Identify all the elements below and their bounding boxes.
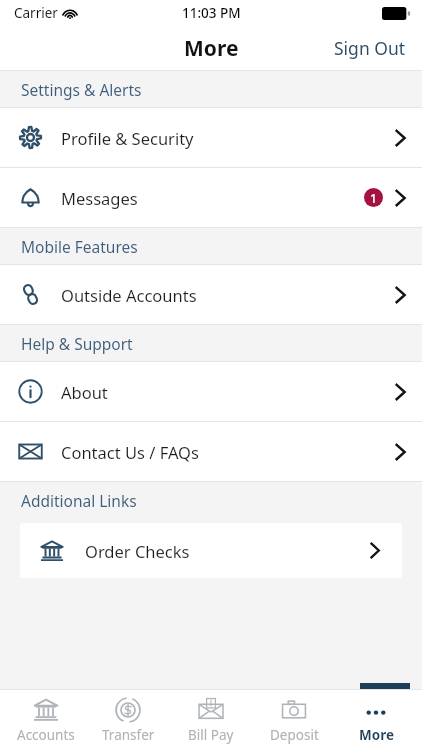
button[interactable]: More bbox=[339, 693, 413, 747]
staticText: More bbox=[359, 726, 394, 744]
staticText: About bbox=[61, 381, 108, 403]
other: About bbox=[18, 379, 43, 404]
staticText: Sign Out bbox=[334, 36, 406, 60]
other: Profile & Security bbox=[18, 125, 43, 150]
button[interactable]: Transfer bbox=[91, 693, 165, 747]
button[interactable]: Order Checks bbox=[20, 523, 402, 578]
staticText: Contact Us / FAQs bbox=[61, 441, 199, 463]
staticText: Profile & Security bbox=[61, 127, 194, 149]
button[interactable]: Deposit bbox=[257, 693, 331, 747]
staticText: Order Checks bbox=[85, 540, 190, 562]
staticText: Mobile Features bbox=[21, 236, 138, 257]
button[interactable]: Sign Out bbox=[318, 26, 422, 70]
button[interactable]: Accounts bbox=[9, 693, 83, 747]
button[interactable]: Bill Pay bbox=[174, 693, 248, 747]
staticText: Messages bbox=[61, 187, 138, 209]
staticText: 11:03 PM bbox=[182, 4, 241, 22]
button[interactable]: Outside Accounts bbox=[0, 265, 422, 324]
staticText: 1 bbox=[370, 190, 377, 206]
staticText: Additional Links bbox=[21, 490, 137, 511]
staticText: Settings & Alerts bbox=[21, 79, 142, 100]
staticText: Accounts bbox=[17, 726, 75, 744]
button[interactable]: About bbox=[0, 362, 422, 421]
staticText: Deposit bbox=[270, 726, 319, 744]
staticText: Bill Pay bbox=[188, 726, 234, 744]
other: Messages bbox=[18, 185, 43, 210]
staticText: Help & Support bbox=[21, 333, 133, 354]
staticText: Transfer bbox=[102, 726, 155, 744]
other: Contact Us / FAQs bbox=[18, 439, 43, 464]
button[interactable]: Contact Us / FAQs bbox=[0, 422, 422, 481]
button[interactable]: Messages bbox=[0, 168, 422, 227]
button[interactable]: Profile & Security bbox=[0, 108, 422, 167]
staticText: More bbox=[184, 34, 239, 63]
other: Outside Accounts bbox=[18, 282, 43, 307]
staticText: Carrier bbox=[14, 4, 58, 22]
staticText: Outside Accounts bbox=[61, 284, 197, 306]
